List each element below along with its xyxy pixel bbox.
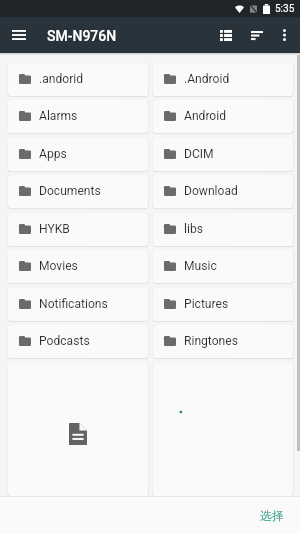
button[interactable]: Sort xyxy=(241,19,273,51)
staticText: Movies xyxy=(39,259,78,273)
staticText: Pictures xyxy=(184,297,229,311)
staticText: Download xyxy=(184,184,238,198)
staticText: 选择 xyxy=(260,508,284,523)
staticText: Apps xyxy=(39,147,67,161)
staticText: Documents xyxy=(39,184,101,198)
staticText: DCIM xyxy=(184,147,214,161)
staticText: libs xyxy=(184,222,203,236)
staticText: SM-N976N xyxy=(47,28,117,44)
button[interactable]: Change view xyxy=(210,19,242,51)
button[interactable]: .Android xyxy=(153,63,293,96)
button[interactable] xyxy=(153,363,293,496)
button[interactable]: Download xyxy=(153,175,293,208)
button[interactable]: Podcasts xyxy=(8,325,148,358)
button[interactable]: libs xyxy=(153,213,293,246)
button[interactable]: DCIM xyxy=(153,138,293,171)
button[interactable]: HYKB xyxy=(8,213,148,246)
button[interactable]: Documents xyxy=(8,175,148,208)
button[interactable]: More options xyxy=(270,21,298,49)
staticText: Podcasts xyxy=(39,334,90,348)
staticText: Notifications xyxy=(39,297,108,311)
staticText: HYKB xyxy=(39,222,70,236)
button[interactable]: Movies xyxy=(8,250,148,283)
staticText: Ringtones xyxy=(184,334,238,348)
button[interactable]: Music xyxy=(153,250,293,283)
button[interactable] xyxy=(8,363,148,496)
staticText: .Android xyxy=(184,72,230,86)
button[interactable]: Navigation menu xyxy=(4,20,34,50)
button[interactable]: Ringtones xyxy=(153,325,293,358)
staticText: 5:35 xyxy=(275,3,295,15)
staticText: Android xyxy=(184,109,227,123)
button[interactable]: Alarms xyxy=(8,100,148,133)
staticText: .andorid xyxy=(39,72,84,86)
button[interactable]: Notifications xyxy=(8,288,148,321)
button[interactable]: Android xyxy=(153,100,293,133)
button[interactable]: .andorid xyxy=(8,63,148,96)
staticText: Alarms xyxy=(39,109,78,123)
button[interactable]: 选择 xyxy=(244,500,300,531)
button[interactable]: Apps xyxy=(8,138,148,171)
staticText: Music xyxy=(184,259,217,273)
button[interactable]: Pictures xyxy=(153,288,293,321)
